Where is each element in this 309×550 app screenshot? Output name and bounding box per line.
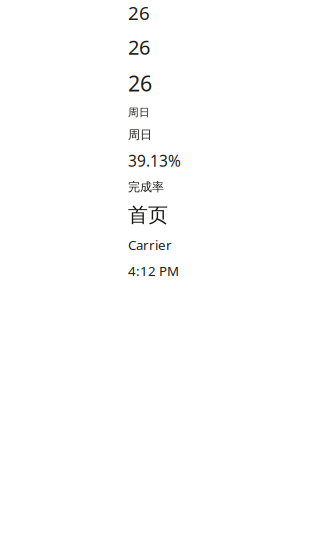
- staticText: 4:12 PM: [128, 262, 179, 280]
- staticText: 完成率: [128, 179, 164, 194]
- staticText: 周日: [128, 106, 150, 119]
- staticText: 26: [128, 69, 152, 98]
- staticText: 周日: [128, 127, 152, 142]
- staticText: 26: [128, 0, 150, 25]
- staticText: 39.13%: [128, 150, 181, 171]
- staticText: 26: [128, 33, 150, 61]
- staticText: Carrier: [128, 236, 172, 254]
- staticText: 首页: [128, 202, 168, 228]
